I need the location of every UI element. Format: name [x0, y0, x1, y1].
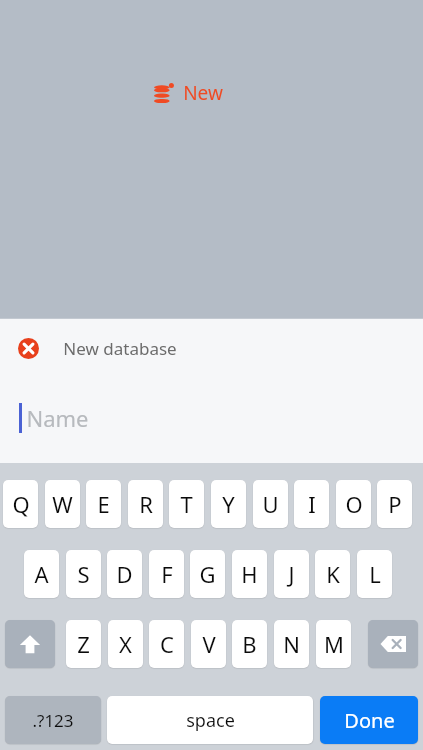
button[interactable]: M — [316, 620, 351, 668]
button[interactable]: .?123 — [5, 696, 101, 744]
button[interactable]: Name — [0, 377, 423, 463]
button[interactable]: P — [377, 480, 412, 528]
staticText: M — [324, 629, 344, 659]
staticText: Y — [222, 489, 235, 519]
button[interactable]: B — [232, 620, 267, 668]
button[interactable]: L — [357, 550, 392, 598]
staticText: V — [202, 629, 216, 659]
staticText: .?123 — [32, 709, 74, 732]
staticText: C — [160, 629, 174, 659]
button[interactable]: R — [128, 480, 163, 528]
button[interactable]: E — [86, 480, 121, 528]
button[interactable]: space — [107, 696, 313, 744]
button[interactable]: V — [191, 620, 226, 668]
button[interactable]: J — [274, 550, 309, 598]
staticText: Q — [12, 489, 30, 519]
staticText: J — [288, 559, 295, 589]
staticText: New database — [63, 337, 177, 360]
button[interactable]: T — [169, 480, 204, 528]
staticText: E — [97, 489, 110, 519]
staticText: G — [199, 559, 216, 589]
button[interactable]: X — [108, 620, 143, 668]
button[interactable]: Close — [10, 330, 46, 366]
button[interactable]: D — [107, 550, 142, 598]
button[interactable]: Y — [211, 480, 246, 528]
button[interactable]: F — [149, 550, 184, 598]
staticText: F — [161, 559, 173, 589]
button[interactable]: H — [232, 550, 267, 598]
staticText: Done — [344, 707, 395, 734]
staticText: Name — [26, 403, 89, 433]
staticText: H — [241, 559, 258, 589]
button[interactable]: C — [149, 620, 184, 668]
button[interactable]: New — [152, 78, 225, 108]
staticText: N — [283, 629, 300, 659]
staticText: U — [262, 489, 279, 519]
staticText: New — [183, 80, 223, 106]
button[interactable]: Backspace — [368, 620, 418, 668]
button[interactable]: O — [336, 480, 371, 528]
staticText: R — [139, 489, 153, 519]
staticText: Z — [77, 629, 90, 659]
staticText: S — [77, 559, 90, 589]
staticText: A — [34, 559, 49, 589]
button[interactable]: N — [274, 620, 309, 668]
staticText: space — [186, 708, 235, 733]
staticText: L — [369, 559, 381, 589]
button[interactable]: U — [253, 480, 288, 528]
staticText: T — [180, 489, 193, 519]
button[interactable]: A — [24, 550, 59, 598]
staticText: I — [308, 489, 316, 519]
button[interactable]: W — [45, 480, 80, 528]
staticText: W — [52, 489, 73, 519]
staticText: D — [116, 559, 133, 589]
button[interactable]: S — [66, 550, 101, 598]
button[interactable]: I — [294, 480, 329, 528]
staticText: X — [119, 629, 132, 659]
button[interactable]: Q — [3, 480, 38, 528]
button[interactable]: G — [190, 550, 225, 598]
button[interactable]: Done — [320, 696, 418, 744]
button[interactable]: Z — [66, 620, 101, 668]
staticText: O — [345, 489, 363, 519]
button[interactable]: Shift — [5, 620, 55, 668]
staticText: P — [388, 489, 402, 519]
staticText: B — [242, 629, 257, 659]
button[interactable]: K — [315, 550, 350, 598]
staticText: K — [326, 559, 340, 589]
